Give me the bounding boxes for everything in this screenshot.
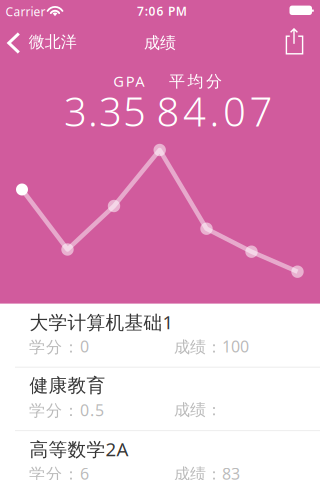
staticText: 3.35 xyxy=(64,84,146,137)
staticText: GPA xyxy=(113,71,144,91)
staticText: 高等数学2A xyxy=(29,437,128,461)
staticText: Carrier xyxy=(5,3,45,19)
staticText: 学分：6 xyxy=(29,463,89,480)
staticText: 84.07 xyxy=(156,84,272,137)
staticText: 学分：0.5 xyxy=(29,399,104,420)
staticText: 微北洋 xyxy=(29,32,77,52)
staticText: 成绩： xyxy=(174,400,222,420)
staticText: 健康教育 xyxy=(29,374,105,397)
staticText: 学分：0 xyxy=(29,336,89,357)
staticText: 成绩：83 xyxy=(174,463,240,480)
staticText: 成绩：100 xyxy=(174,336,249,357)
staticText: 成绩 xyxy=(144,33,176,53)
staticText: 7:06 PM xyxy=(137,3,187,19)
staticText: 平均分 xyxy=(169,72,222,91)
staticText: 大学计算机基础1 xyxy=(29,309,173,334)
